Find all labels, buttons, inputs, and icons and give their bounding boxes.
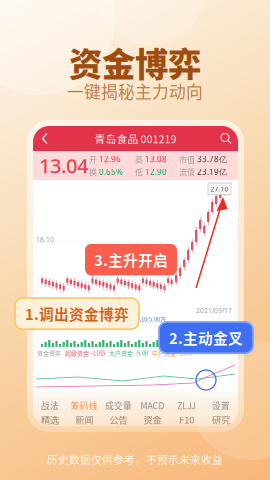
staticText: 2021/09/17 <box>196 306 232 315</box>
staticText: 资金博弈 <box>69 38 201 86</box>
staticText: 2.主动金叉 <box>169 327 243 348</box>
staticText: 资金 <box>144 413 162 426</box>
staticText: 新闻 <box>75 413 93 426</box>
button[interactable]: F10 <box>170 413 204 426</box>
staticText: 市值 <box>179 153 195 165</box>
button[interactable]: 精选 <box>33 413 67 426</box>
staticText: ZLJJ <box>177 399 196 412</box>
staticText: 战法 <box>41 399 59 412</box>
button[interactable]: 搜索 <box>218 126 234 150</box>
staticText: MACD <box>141 399 165 412</box>
staticText: 3.主升开启 <box>94 249 168 270</box>
staticText: 研究 <box>212 413 230 426</box>
button[interactable]: 战法 <box>33 398 67 413</box>
staticText: 23.19亿 <box>197 166 227 177</box>
staticText: 大户资金:-5.00 <box>109 349 148 357</box>
staticText: 低 <box>135 166 143 178</box>
button[interactable]: 筹码线 <box>67 398 101 413</box>
staticText: 超级资金:-1165 <box>65 349 105 357</box>
staticText: 27.10 <box>210 184 228 193</box>
button[interactable]: 新闻 <box>67 413 101 426</box>
button[interactable]: MACD <box>135 398 170 413</box>
staticText: F10 <box>179 413 194 426</box>
button[interactable]: 公告 <box>101 413 135 426</box>
staticText: 13.08 <box>145 154 167 164</box>
staticText: 1.调出资金博弈 <box>25 303 129 324</box>
staticText: 换 <box>89 166 97 178</box>
staticText: 一键揭秘主力动向 <box>67 79 203 103</box>
staticText: 设置 <box>212 399 230 412</box>
staticText: 13.04 <box>39 152 88 179</box>
staticText: 12.96 <box>99 154 121 164</box>
staticText: 筹码线 <box>71 399 98 412</box>
staticText: 开 <box>89 153 97 165</box>
staticText: 18.10 <box>36 235 54 244</box>
staticText: 高 <box>135 153 143 165</box>
button[interactable]: ZLJJ <box>170 398 204 413</box>
button[interactable]: 研究 <box>204 413 238 426</box>
staticText: 中户资金:-2398 <box>152 349 192 357</box>
staticText: 历史数据仅供参考，不预示未来收益 <box>47 451 223 467</box>
staticText: 12.90 <box>145 166 167 177</box>
button[interactable]: 资金 <box>135 413 170 426</box>
staticText: 流值 <box>179 166 195 178</box>
staticText: 精选 <box>41 413 59 426</box>
staticText: MA10:5.00万 <box>132 315 166 323</box>
staticText: 资金博弈 <box>37 349 61 357</box>
staticText: MA5:1.65万 <box>97 315 128 323</box>
staticText: 青岛食品 001219 <box>94 131 176 146</box>
staticText: 33.78亿 <box>197 154 227 164</box>
staticText: 成交量 <box>37 315 55 323</box>
button[interactable]: 返回 <box>37 126 53 150</box>
button[interactable]: 成交量 <box>101 398 135 413</box>
staticText: 成交量:118.5 <box>59 315 93 323</box>
staticText: 成交量 <box>105 399 132 412</box>
staticText: 0.65% <box>99 166 123 177</box>
button[interactable]: 设置 <box>204 398 238 413</box>
staticText: 公告 <box>109 413 127 426</box>
